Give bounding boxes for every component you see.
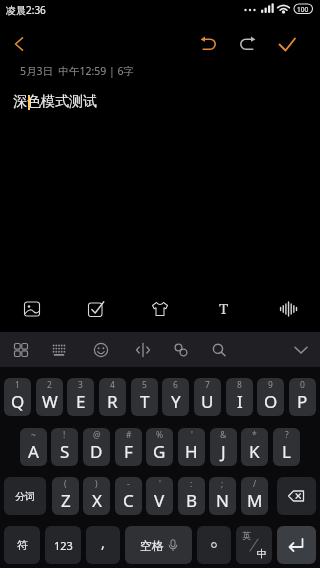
staticText: 4 <box>110 379 115 391</box>
button[interactable]: 2 <box>36 378 63 416</box>
staticText: * <box>252 429 257 441</box>
staticText: & <box>220 429 227 441</box>
staticText: % <box>156 429 164 441</box>
staticText: G <box>153 440 166 463</box>
staticText: I <box>237 390 243 413</box>
staticText: ? <box>285 429 289 441</box>
staticText: O <box>264 390 278 413</box>
button[interactable]: ! <box>51 428 78 466</box>
staticText: E <box>76 390 86 413</box>
button[interactable] <box>236 33 258 55</box>
button[interactable]: 1 <box>4 378 31 416</box>
button[interactable]: ( <box>52 477 79 515</box>
staticText: # <box>126 429 132 441</box>
button[interactable]: 符 <box>4 526 40 564</box>
staticText: 中 <box>257 547 267 560</box>
button[interactable]: # <box>115 428 142 466</box>
staticText: L <box>282 440 291 463</box>
button[interactable]: ) <box>83 477 110 515</box>
button[interactable]: / <box>241 477 268 515</box>
button[interactable]: 空格 <box>125 526 192 564</box>
staticText: 6 <box>173 379 178 391</box>
staticText: B <box>186 489 198 512</box>
staticText: - <box>127 478 130 490</box>
staticText: 5 <box>142 379 147 391</box>
button[interactable] <box>198 33 220 55</box>
staticText: ; <box>221 478 224 490</box>
button[interactable]: & <box>210 428 237 466</box>
staticText: D <box>90 440 103 463</box>
button[interactable]: ~ <box>20 428 47 466</box>
button[interactable]: 6 <box>162 378 189 416</box>
staticText: T <box>219 298 229 318</box>
button[interactable]: 9 <box>257 378 284 416</box>
button[interactable] <box>135 342 151 358</box>
button[interactable] <box>23 300 41 318</box>
staticText: 符 <box>17 538 28 552</box>
staticText: 2 <box>47 379 52 391</box>
staticText: ! <box>63 429 66 441</box>
button[interactable]: ? <box>273 428 300 466</box>
staticText: Y <box>171 390 181 413</box>
staticText: M <box>247 489 263 512</box>
staticText: T <box>140 390 150 413</box>
staticText: 凌晨2:36 <box>6 3 46 17</box>
button[interactable]: T <box>216 298 232 318</box>
button[interactable]: * <box>241 428 268 466</box>
button[interactable] <box>276 33 298 55</box>
button[interactable]: 0 <box>289 378 316 416</box>
button[interactable] <box>293 342 309 358</box>
staticText: 9 <box>268 379 273 391</box>
staticText: 5月3日 中午12:59 | 6字 <box>20 64 135 78</box>
staticText: X <box>92 489 102 512</box>
button[interactable] <box>279 300 297 318</box>
staticText: 深色模式测试 <box>13 93 97 111</box>
button[interactable]: 分词 <box>4 477 46 515</box>
button[interactable] <box>51 342 67 358</box>
button[interactable] <box>211 342 227 358</box>
button[interactable]: 123 <box>45 526 81 564</box>
staticText: R <box>107 390 118 413</box>
button[interactable] <box>93 342 109 358</box>
staticText: ( <box>64 478 67 490</box>
button[interactable]: : <box>178 477 205 515</box>
button[interactable]: ; <box>209 477 236 515</box>
staticText: , <box>101 533 105 552</box>
button[interactable]: 8 <box>226 378 253 416</box>
staticText: U <box>201 390 214 413</box>
button[interactable] <box>277 526 316 564</box>
staticText: 7 <box>205 379 210 391</box>
staticText: J <box>221 440 226 463</box>
button[interactable] <box>13 342 29 358</box>
button[interactable]: - <box>115 477 142 515</box>
staticText: K <box>249 440 260 463</box>
button[interactable] <box>150 300 170 318</box>
staticText: V <box>154 489 165 512</box>
staticText: W <box>42 390 58 413</box>
button[interactable]: @ <box>83 428 110 466</box>
button[interactable] <box>10 34 30 54</box>
button[interactable] <box>197 526 231 564</box>
staticText: S <box>60 440 70 463</box>
button[interactable]: 英 <box>236 526 272 564</box>
staticText: 0 <box>300 379 305 391</box>
staticText: Q <box>11 390 25 413</box>
staticText: / <box>253 478 257 490</box>
button[interactable]: ' <box>146 477 173 515</box>
button[interactable]: % <box>146 428 173 466</box>
staticText: 1 <box>15 379 20 391</box>
button[interactable] <box>173 342 189 358</box>
button[interactable]: 3 <box>67 378 94 416</box>
button[interactable]: ' <box>178 428 205 466</box>
staticText: 100 <box>297 5 309 14</box>
button[interactable]: 5 <box>131 378 158 416</box>
staticText: Z <box>61 489 71 512</box>
button[interactable]: 4 <box>99 378 126 416</box>
staticText: ' <box>191 429 193 441</box>
button[interactable]: 7 <box>194 378 221 416</box>
staticText: 123 <box>54 538 73 553</box>
staticText: ~ <box>31 429 36 441</box>
button[interactable] <box>87 300 105 318</box>
button[interactable] <box>277 477 316 515</box>
button[interactable]: , <box>86 526 120 564</box>
